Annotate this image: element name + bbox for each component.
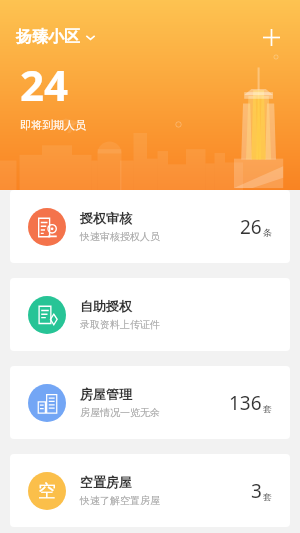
staticText: 空置房屋 — [80, 474, 132, 490]
staticText: 快速了解空置房屋 — [80, 494, 160, 507]
button[interactable]: 房屋管理 — [10, 366, 290, 439]
button[interactable]: 授权审核 — [10, 190, 290, 263]
staticText: 自助授权 — [80, 298, 132, 314]
button[interactable]: 扬臻小区 — [16, 27, 96, 47]
staticText: 条 — [263, 227, 272, 238]
staticText: 3 — [251, 478, 262, 504]
staticText: 136 — [229, 390, 262, 416]
staticText: 快速审核授权人员 — [80, 230, 160, 243]
staticText: 授权审核 — [80, 210, 132, 226]
button[interactable]: Add — [256, 22, 286, 52]
staticText: 扬臻小区 — [16, 27, 80, 47]
staticText: 录取资料上传证件 — [80, 318, 160, 331]
staticText: 空 — [38, 480, 56, 503]
button[interactable]: 空 — [10, 454, 290, 527]
staticText: 房屋管理 — [80, 386, 132, 402]
staticText: 24 — [20, 56, 69, 113]
staticText: 26 — [240, 214, 262, 240]
button[interactable]: 自助授权 — [10, 278, 290, 351]
staticText: 房屋情况一览无余 — [80, 406, 160, 419]
staticText: 套 — [263, 403, 272, 414]
staticText: 即将到期人员 — [20, 118, 86, 132]
staticText: 套 — [263, 491, 272, 502]
